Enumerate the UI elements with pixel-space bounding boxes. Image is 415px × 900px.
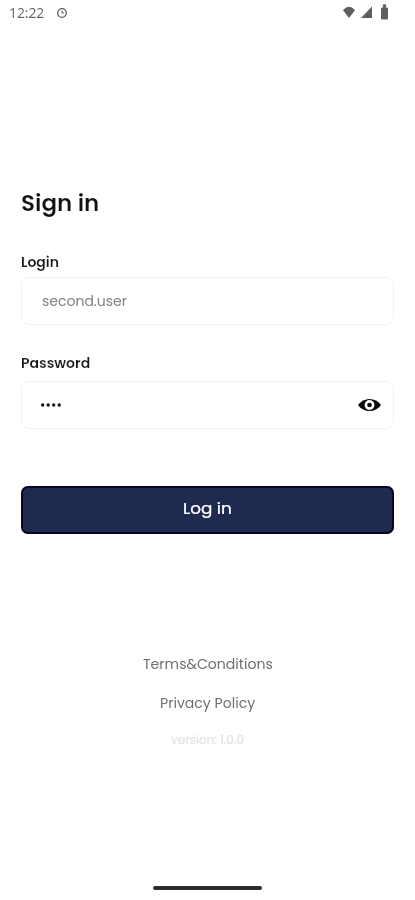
button[interactable]: Terms&Conditions <box>133 651 283 677</box>
staticText: Privacy Policy <box>160 693 256 713</box>
staticText: version: 1.0.0 <box>171 731 244 748</box>
staticText: Terms&Conditions <box>143 654 273 674</box>
staticText: Password <box>21 353 91 373</box>
staticText: Log in <box>183 496 232 520</box>
button[interactable]: Log in <box>21 486 394 534</box>
staticText: second.user <box>42 291 127 311</box>
button[interactable]: Show password <box>21 381 394 429</box>
button[interactable]: Privacy Policy <box>150 690 266 716</box>
button[interactable]: second.user <box>21 277 394 325</box>
staticText: 12:22 <box>9 3 45 22</box>
staticText: Login <box>21 252 59 272</box>
button[interactable]: Show password <box>354 390 384 420</box>
staticText: Sign in <box>21 187 100 219</box>
